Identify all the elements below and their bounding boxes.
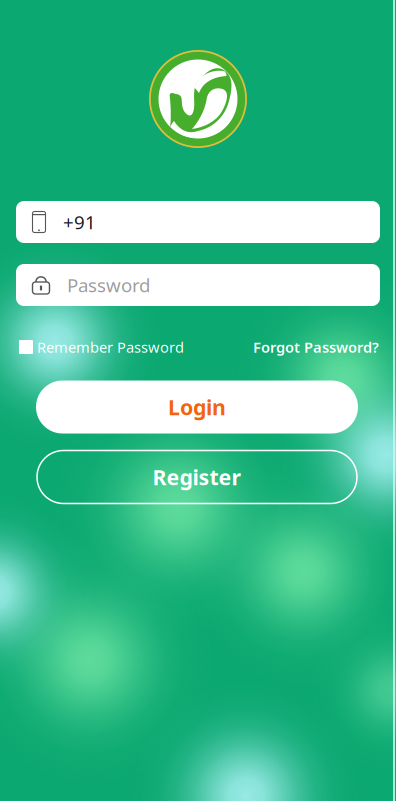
- button[interactable]: Remember Password: [19, 331, 184, 363]
- staticText: Register: [152, 463, 241, 491]
- staticText: +91: [63, 210, 96, 234]
- staticText: Forgot Password?: [253, 337, 379, 357]
- button[interactable]: Login: [36, 380, 358, 433]
- button[interactable]: Register: [37, 450, 357, 503]
- staticText: Remember Password: [37, 337, 184, 357]
- button[interactable]: Forgot Password?: [253, 331, 379, 363]
- staticText: Login: [168, 393, 226, 421]
- staticText: Password: [67, 273, 150, 297]
